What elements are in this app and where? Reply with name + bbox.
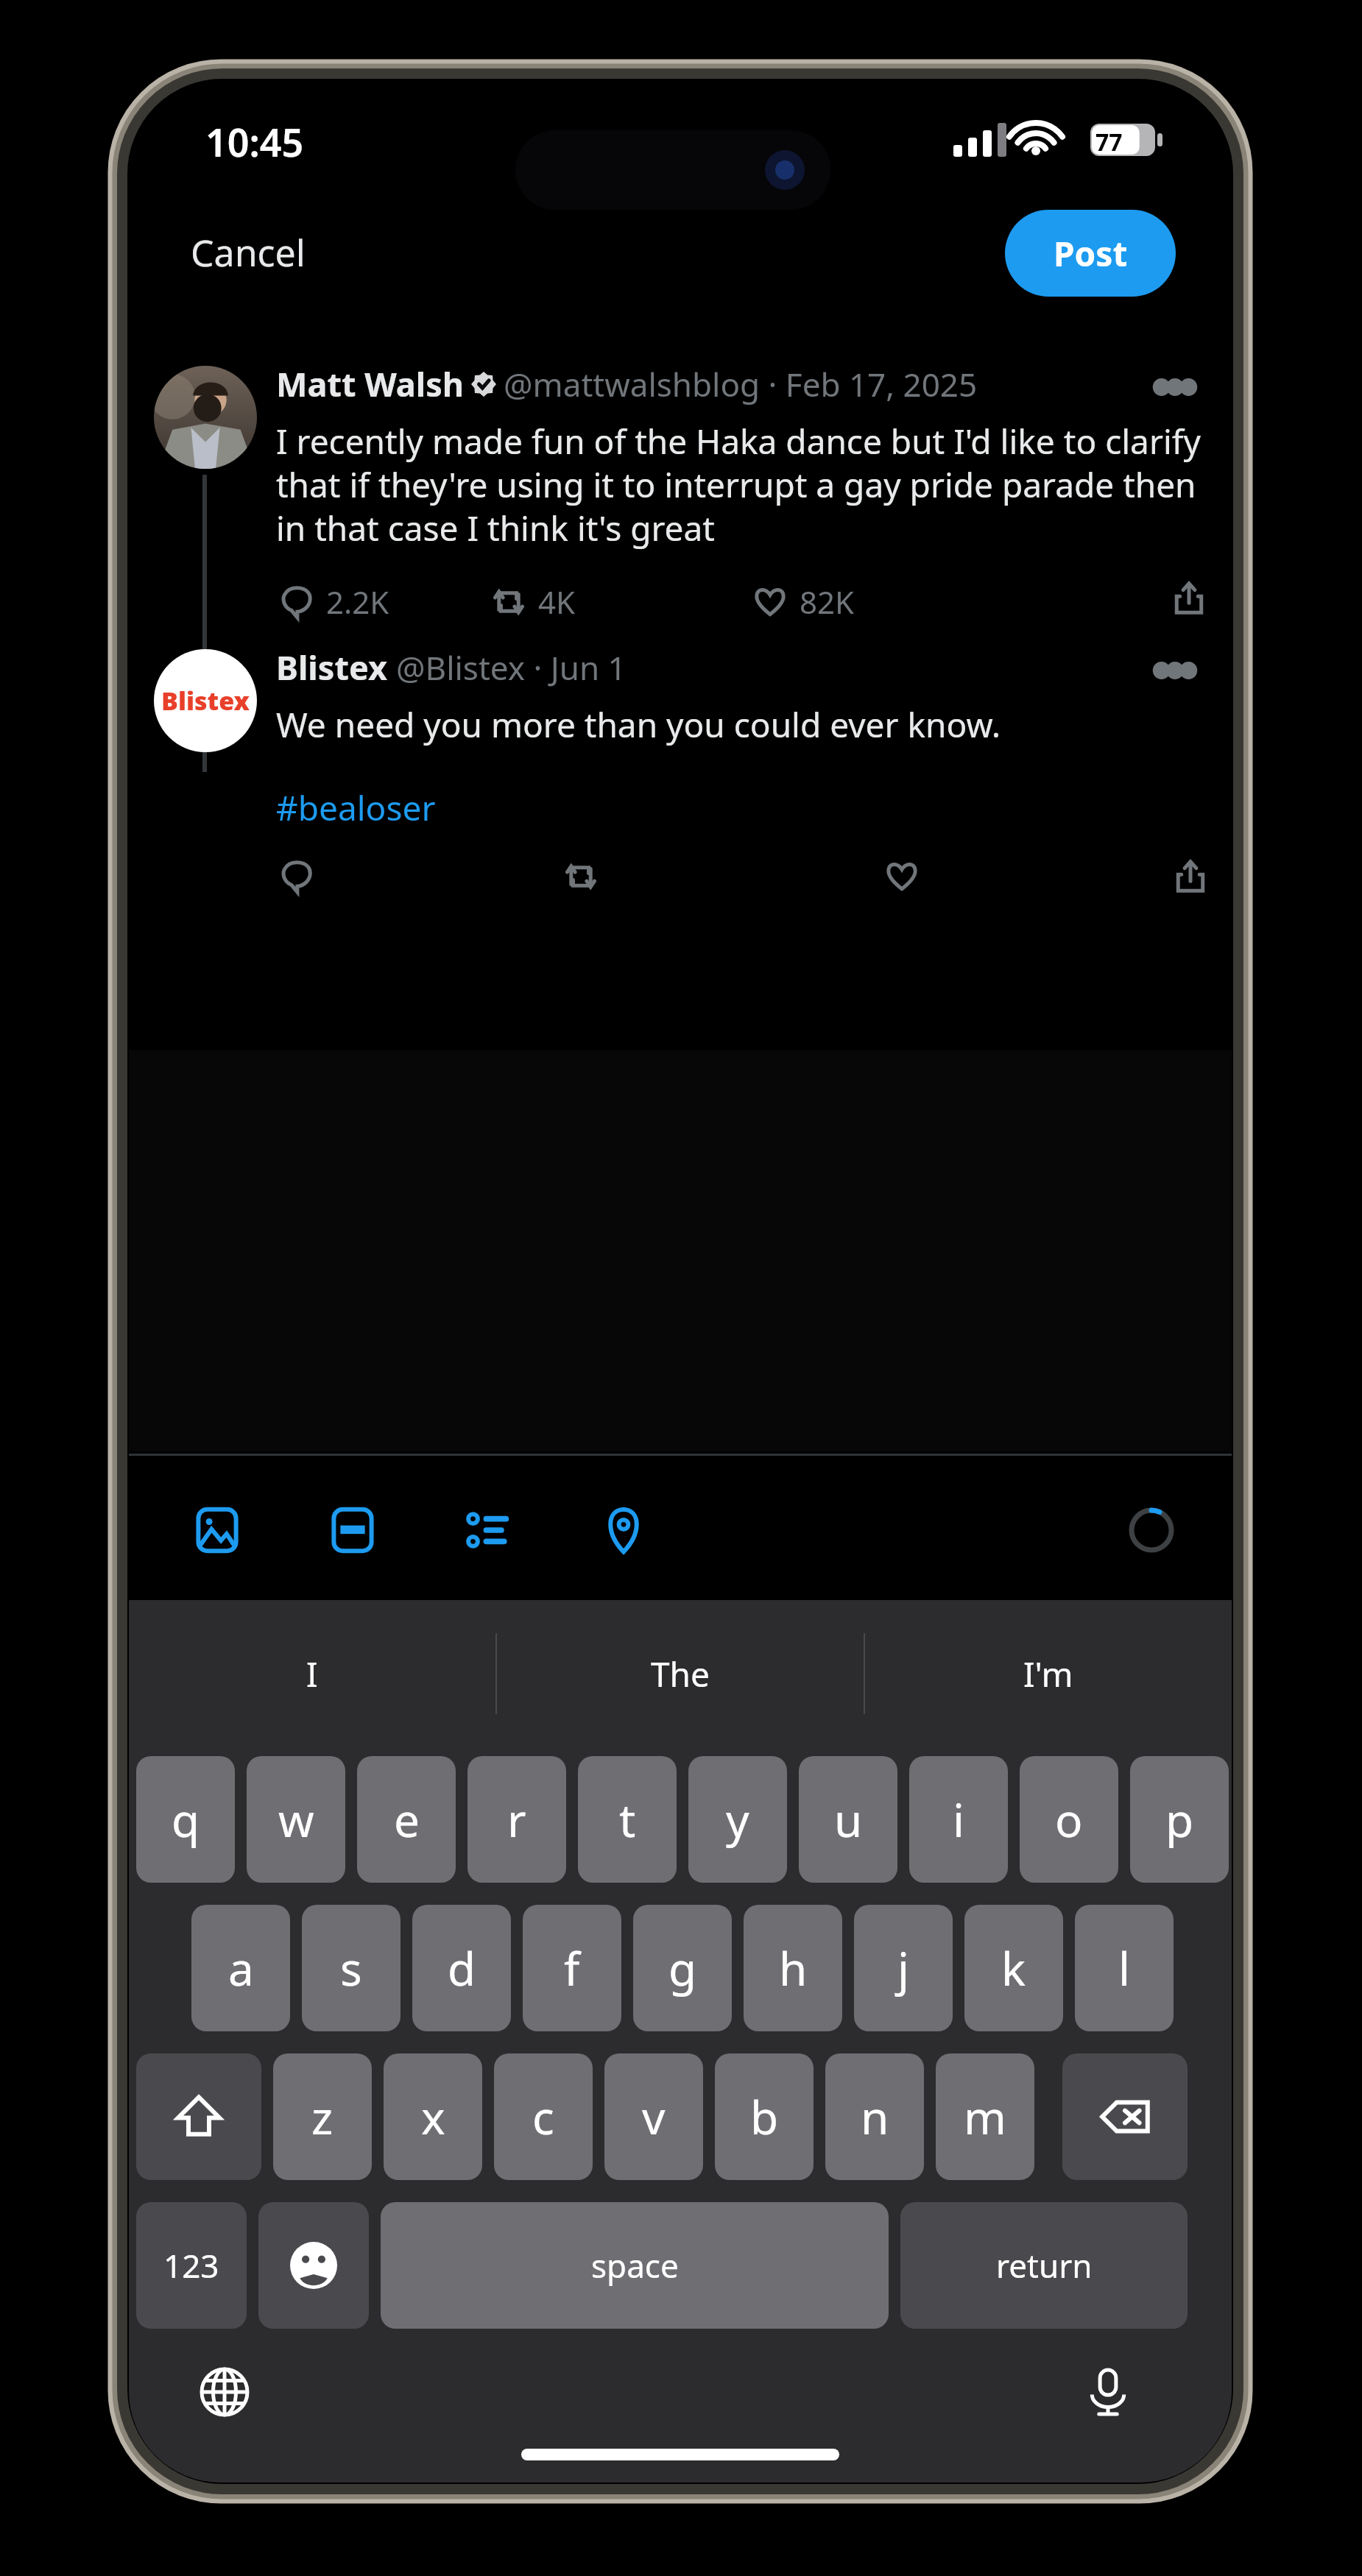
staticText: g: [668, 1937, 697, 1999]
button[interactable]: The: [497, 1600, 864, 1747]
button[interactable]: 4K: [488, 576, 580, 627]
button[interactable]: w: [247, 1756, 345, 1883]
button[interactable]: k: [964, 1905, 1063, 2031]
button[interactable]: Add location: [593, 1499, 654, 1561]
staticText: 2.2K: [326, 581, 389, 623]
staticText: d: [448, 1937, 476, 1999]
staticText: n: [861, 2086, 889, 2148]
staticText: space: [591, 2243, 679, 2287]
button[interactable]: x: [384, 2053, 482, 2180]
staticText: We need you more than you could ever kno…: [276, 701, 1001, 748]
button[interactable]: return: [900, 2202, 1188, 2329]
staticText: r: [507, 1788, 526, 1850]
staticText: 123: [163, 2243, 219, 2287]
staticText: e: [394, 1788, 420, 1850]
button[interactable]: Add photo: [186, 1499, 248, 1561]
button[interactable]: y: [688, 1756, 787, 1883]
staticText: Matt Walsh: [276, 361, 464, 406]
button[interactable]: i: [909, 1756, 1008, 1883]
staticText: q: [172, 1788, 200, 1850]
button[interactable]: s: [302, 1905, 401, 2031]
staticText: return: [996, 2243, 1093, 2287]
staticText: y: [726, 1788, 749, 1850]
button[interactable]: a: [191, 1905, 290, 2031]
staticText: 82K: [800, 581, 855, 623]
staticText: i: [953, 1788, 964, 1850]
staticText: 77: [1095, 126, 1123, 158]
button[interactable]: 82K: [749, 576, 859, 627]
button[interactable]: space: [381, 2202, 889, 2329]
button[interactable]: v: [604, 2053, 703, 2180]
button[interactable]: Dictation: [1077, 2361, 1139, 2423]
button[interactable]: b: [715, 2053, 814, 2180]
button[interactable]: Add poll: [457, 1499, 519, 1561]
button[interactable]: n: [825, 2053, 924, 2180]
staticText: I'm: [1023, 1651, 1073, 1697]
button[interactable]: Post: [1005, 210, 1176, 297]
staticText: k: [1001, 1937, 1026, 1999]
button[interactable]: Cancel: [173, 219, 323, 286]
button[interactable]: t: [578, 1756, 677, 1883]
staticText: a: [228, 1937, 254, 1999]
staticText: I recently made fun of the Haka dance bu…: [276, 418, 1211, 551]
button[interactable]: Shift: [136, 2053, 261, 2180]
staticText: The: [651, 1651, 710, 1697]
staticText: Cancel: [191, 227, 306, 277]
staticText: @Blistex · Jun 1: [396, 645, 627, 690]
button[interactable]: h: [744, 1905, 842, 2031]
button[interactable]: e: [357, 1756, 456, 1883]
staticText: @mattwalshblog · Feb 17, 2025: [504, 362, 978, 406]
staticText: I: [306, 1651, 318, 1697]
staticText: m: [964, 2086, 1006, 2148]
staticText: x: [421, 2086, 445, 2148]
button[interactable]: Like: [881, 856, 922, 897]
button[interactable]: u: [799, 1756, 897, 1883]
button[interactable]: Emoji: [258, 2202, 369, 2329]
button[interactable]: I'm: [865, 1600, 1232, 1747]
staticText: w: [278, 1788, 314, 1850]
button[interactable]: Share: [1167, 576, 1211, 620]
button[interactable]: o: [1020, 1756, 1118, 1883]
button[interactable]: Matt Walsh profile photo: [154, 366, 257, 469]
staticText: h: [779, 1937, 808, 1999]
button[interactable]: More options: [1145, 357, 1205, 417]
button[interactable]: q: [136, 1756, 235, 1883]
button[interactable]: p: [1130, 1756, 1229, 1883]
staticText: #bealoser: [276, 785, 436, 831]
staticText: c: [532, 2086, 554, 2148]
staticText: Blistex: [276, 645, 387, 690]
staticText: Post: [1054, 230, 1128, 277]
staticText: t: [619, 1788, 636, 1850]
staticText: o: [1055, 1788, 1083, 1850]
staticText: b: [750, 2086, 779, 2148]
staticText: u: [834, 1788, 863, 1850]
button[interactable]: Repost: [560, 856, 601, 897]
button[interactable]: l: [1075, 1905, 1174, 2031]
button[interactable]: Blistex profile photo: [154, 649, 257, 752]
staticText: p: [1165, 1788, 1194, 1850]
button[interactable]: r: [467, 1756, 566, 1883]
button[interactable]: Share: [1170, 856, 1211, 897]
button[interactable]: Reply: [276, 856, 317, 897]
button[interactable]: More options: [1145, 640, 1205, 701]
button[interactable]: d: [412, 1905, 511, 2031]
button[interactable]: Character count: [1123, 1501, 1180, 1559]
button[interactable]: Add GIF: [322, 1499, 384, 1561]
button[interactable]: j: [854, 1905, 953, 2031]
staticText: f: [564, 1937, 580, 1999]
button[interactable]: 2.2K: [276, 576, 394, 627]
button[interactable]: Change keyboard: [194, 2361, 255, 2423]
button[interactable]: g: [633, 1905, 732, 2031]
staticText: s: [340, 1937, 362, 1999]
button[interactable]: c: [494, 2053, 593, 2180]
button[interactable]: Backspace: [1062, 2053, 1188, 2180]
staticText: v: [642, 2086, 666, 2148]
staticText: Blistex: [161, 684, 250, 718]
button[interactable]: 123: [136, 2202, 247, 2329]
button[interactable]: z: [273, 2053, 372, 2180]
button[interactable]: I: [129, 1600, 495, 1747]
button[interactable]: m: [936, 2053, 1034, 2180]
staticText: 10:45: [205, 116, 304, 168]
button[interactable]: f: [523, 1905, 621, 2031]
